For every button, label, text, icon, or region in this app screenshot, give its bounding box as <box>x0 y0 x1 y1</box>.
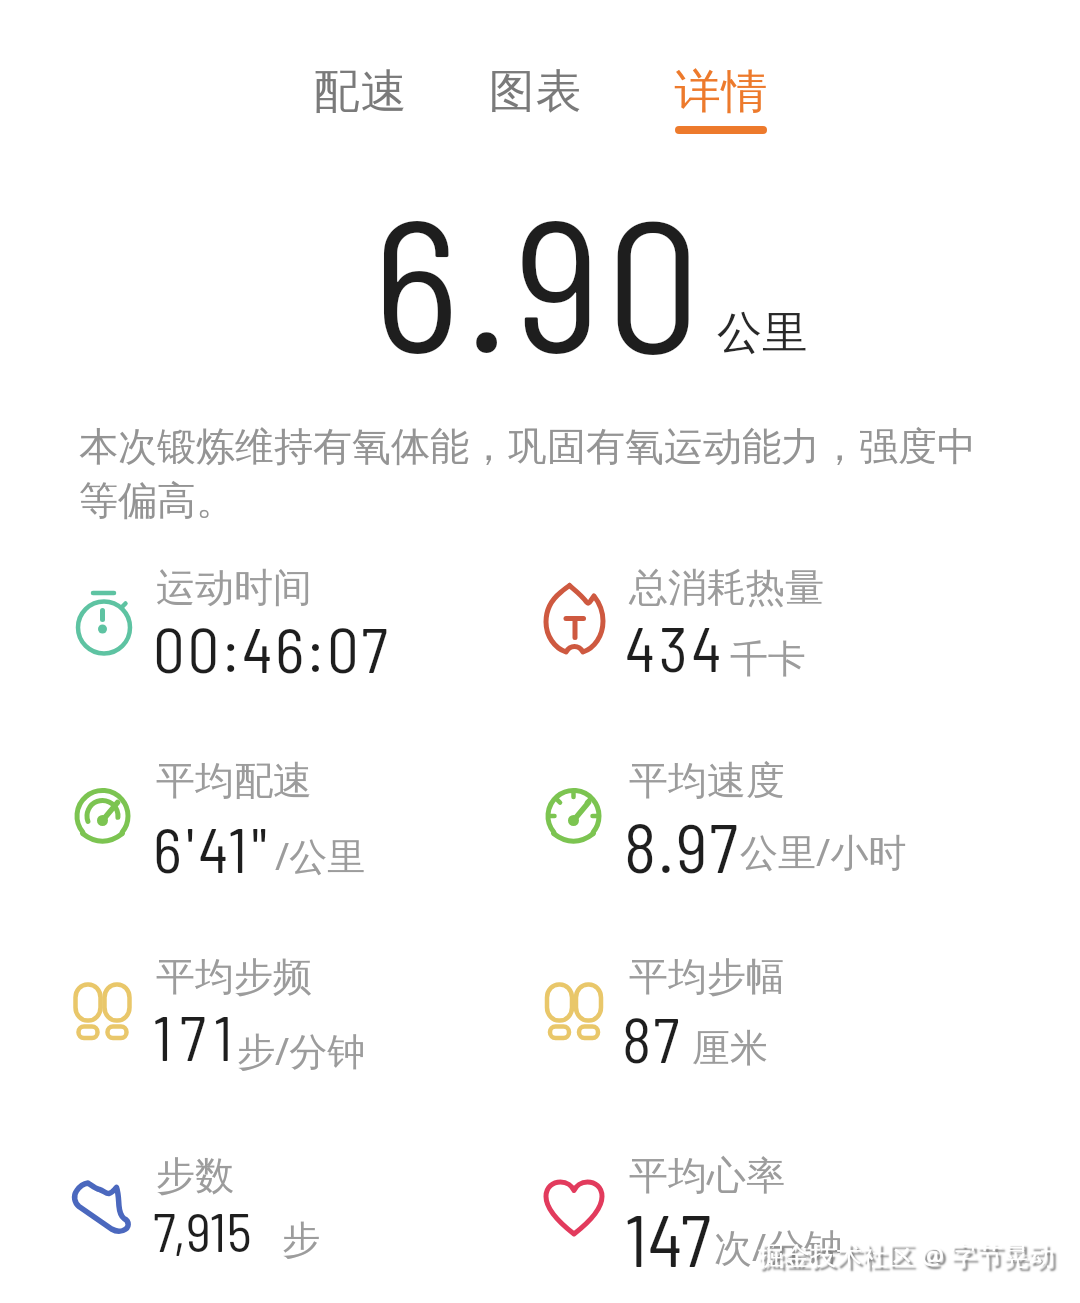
button[interactable]: 详情 <box>654 51 788 133</box>
button[interactable]: 图表 <box>468 51 602 133</box>
staticText: 公里 <box>717 305 807 362</box>
staticText: 平均步频 <box>156 952 312 1001</box>
staticText: 详情 <box>674 63 768 121</box>
staticText: 平均配速 <box>156 756 312 805</box>
staticText: 平均心率 <box>629 1151 785 1200</box>
staticText: 6.90 <box>373 167 706 390</box>
staticText: 平均步幅 <box>629 952 785 1001</box>
staticText: 步 <box>282 1216 320 1264</box>
staticText: 掘金技术社区 @ 字节晃动 <box>758 1237 1055 1273</box>
staticText: 千卡 <box>730 635 806 683</box>
staticText: 87 <box>622 1001 682 1075</box>
staticText: 6'41" <box>153 811 272 885</box>
staticText: 7,915 <box>153 1198 253 1263</box>
staticText: 厘米 <box>692 1024 768 1072</box>
staticText: 公里/小时 <box>740 825 907 877</box>
staticText: 本次锻炼维持有氧体能，巩固有氧运动能力，强度中 等偏高。 <box>79 422 976 526</box>
staticText: 配速 <box>313 63 407 121</box>
staticText: 运动时间 <box>156 563 312 612</box>
staticText: 00:46:07 <box>153 610 391 686</box>
staticText: 434 <box>625 610 726 684</box>
staticText: 平均速度 <box>629 756 785 805</box>
staticText: /公里 <box>275 829 366 881</box>
staticText: 8.97 <box>624 805 740 887</box>
staticText: 图表 <box>488 63 582 121</box>
staticText: 步数 <box>156 1151 234 1200</box>
staticText: 147 <box>625 1195 713 1281</box>
staticText: 171 <box>153 999 241 1073</box>
button[interactable]: 配速 <box>293 51 427 133</box>
staticText: 步/分钟 <box>237 1024 366 1076</box>
staticText: 总消耗热量 <box>629 563 824 612</box>
staticText: 次/分钟 <box>714 1220 843 1272</box>
